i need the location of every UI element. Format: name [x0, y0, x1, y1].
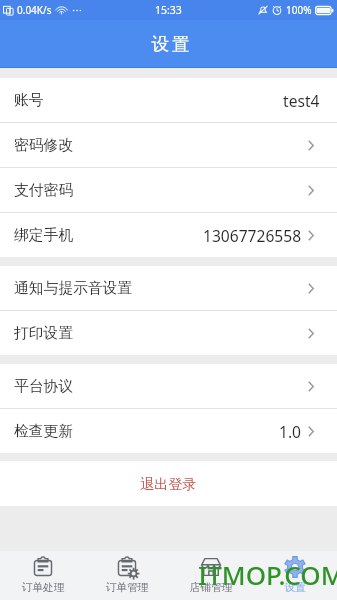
staticText: 1.0 — [279, 421, 302, 442]
staticText: 通知与提示音设置 — [14, 279, 133, 298]
button[interactable]: 通知与提示音设置 — [0, 266, 337, 310]
staticText: 退出登录 — [140, 475, 197, 493]
staticText: 13067726558 — [203, 225, 302, 246]
staticText: ITMOP.COM — [198, 557, 337, 592]
staticText: 绑定手机 — [14, 226, 74, 245]
staticText: 100% — [286, 3, 312, 17]
staticText: 打印设置 — [14, 324, 74, 343]
staticText: test4 — [283, 90, 320, 111]
button[interactable]: 账号 — [0, 78, 337, 122]
staticText: 支付密码 — [14, 181, 74, 200]
staticText: 店铺管理 — [189, 581, 233, 595]
staticText: 设置 — [284, 581, 306, 595]
button[interactable]: 密码修改 — [0, 123, 337, 167]
staticText: 设置 — [150, 33, 191, 55]
button[interactable]: 检查更新 — [0, 409, 337, 453]
staticText: 账号 — [14, 91, 44, 110]
staticText: 订单处理 — [21, 581, 65, 595]
staticText: 检查更新 — [14, 422, 74, 441]
button[interactable]: 绑定手机 — [0, 213, 337, 257]
staticText: 0.04K/s — [17, 3, 52, 17]
staticText: 订单管理 — [105, 581, 149, 595]
button[interactable]: 平台协议 — [0, 364, 337, 408]
staticText: 密码修改 — [14, 136, 74, 155]
button[interactable]: 设置 — [253, 551, 337, 600]
button[interactable]: 退出登录 — [0, 461, 337, 506]
staticText: 平台协议 — [14, 377, 74, 396]
staticText: 15:33 — [155, 3, 182, 17]
button[interactable]: 支付密码 — [0, 168, 337, 212]
button[interactable]: 打印设置 — [0, 311, 337, 355]
button[interactable]: 店铺管理 — [169, 551, 253, 600]
button[interactable]: 订单管理 — [85, 551, 169, 600]
button[interactable]: 订单处理 — [0, 551, 85, 600]
